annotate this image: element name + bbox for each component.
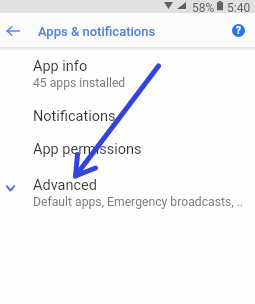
staticText: Notifications [33, 108, 116, 125]
button[interactable]: App permissions [0, 138, 255, 171]
staticText: Apps & notifications [38, 24, 156, 39]
staticText: Default apps, Emergency broadcasts, .. [33, 195, 244, 209]
button[interactable]: Notifications [0, 105, 255, 138]
staticText: ? [236, 25, 241, 37]
button[interactable]: App info [0, 55, 255, 91]
staticText: App info [33, 58, 88, 75]
staticText: 58% [192, 1, 215, 14]
button[interactable]: Navigate up [0, 14, 28, 47]
button[interactable]: Advanced [0, 174, 255, 210]
staticText: Advanced [33, 177, 97, 194]
staticText: 45 apps installed [33, 76, 126, 90]
button[interactable]: Help [224, 16, 252, 44]
staticText: App permissions [33, 141, 142, 158]
staticText: 5:40 [227, 1, 251, 14]
